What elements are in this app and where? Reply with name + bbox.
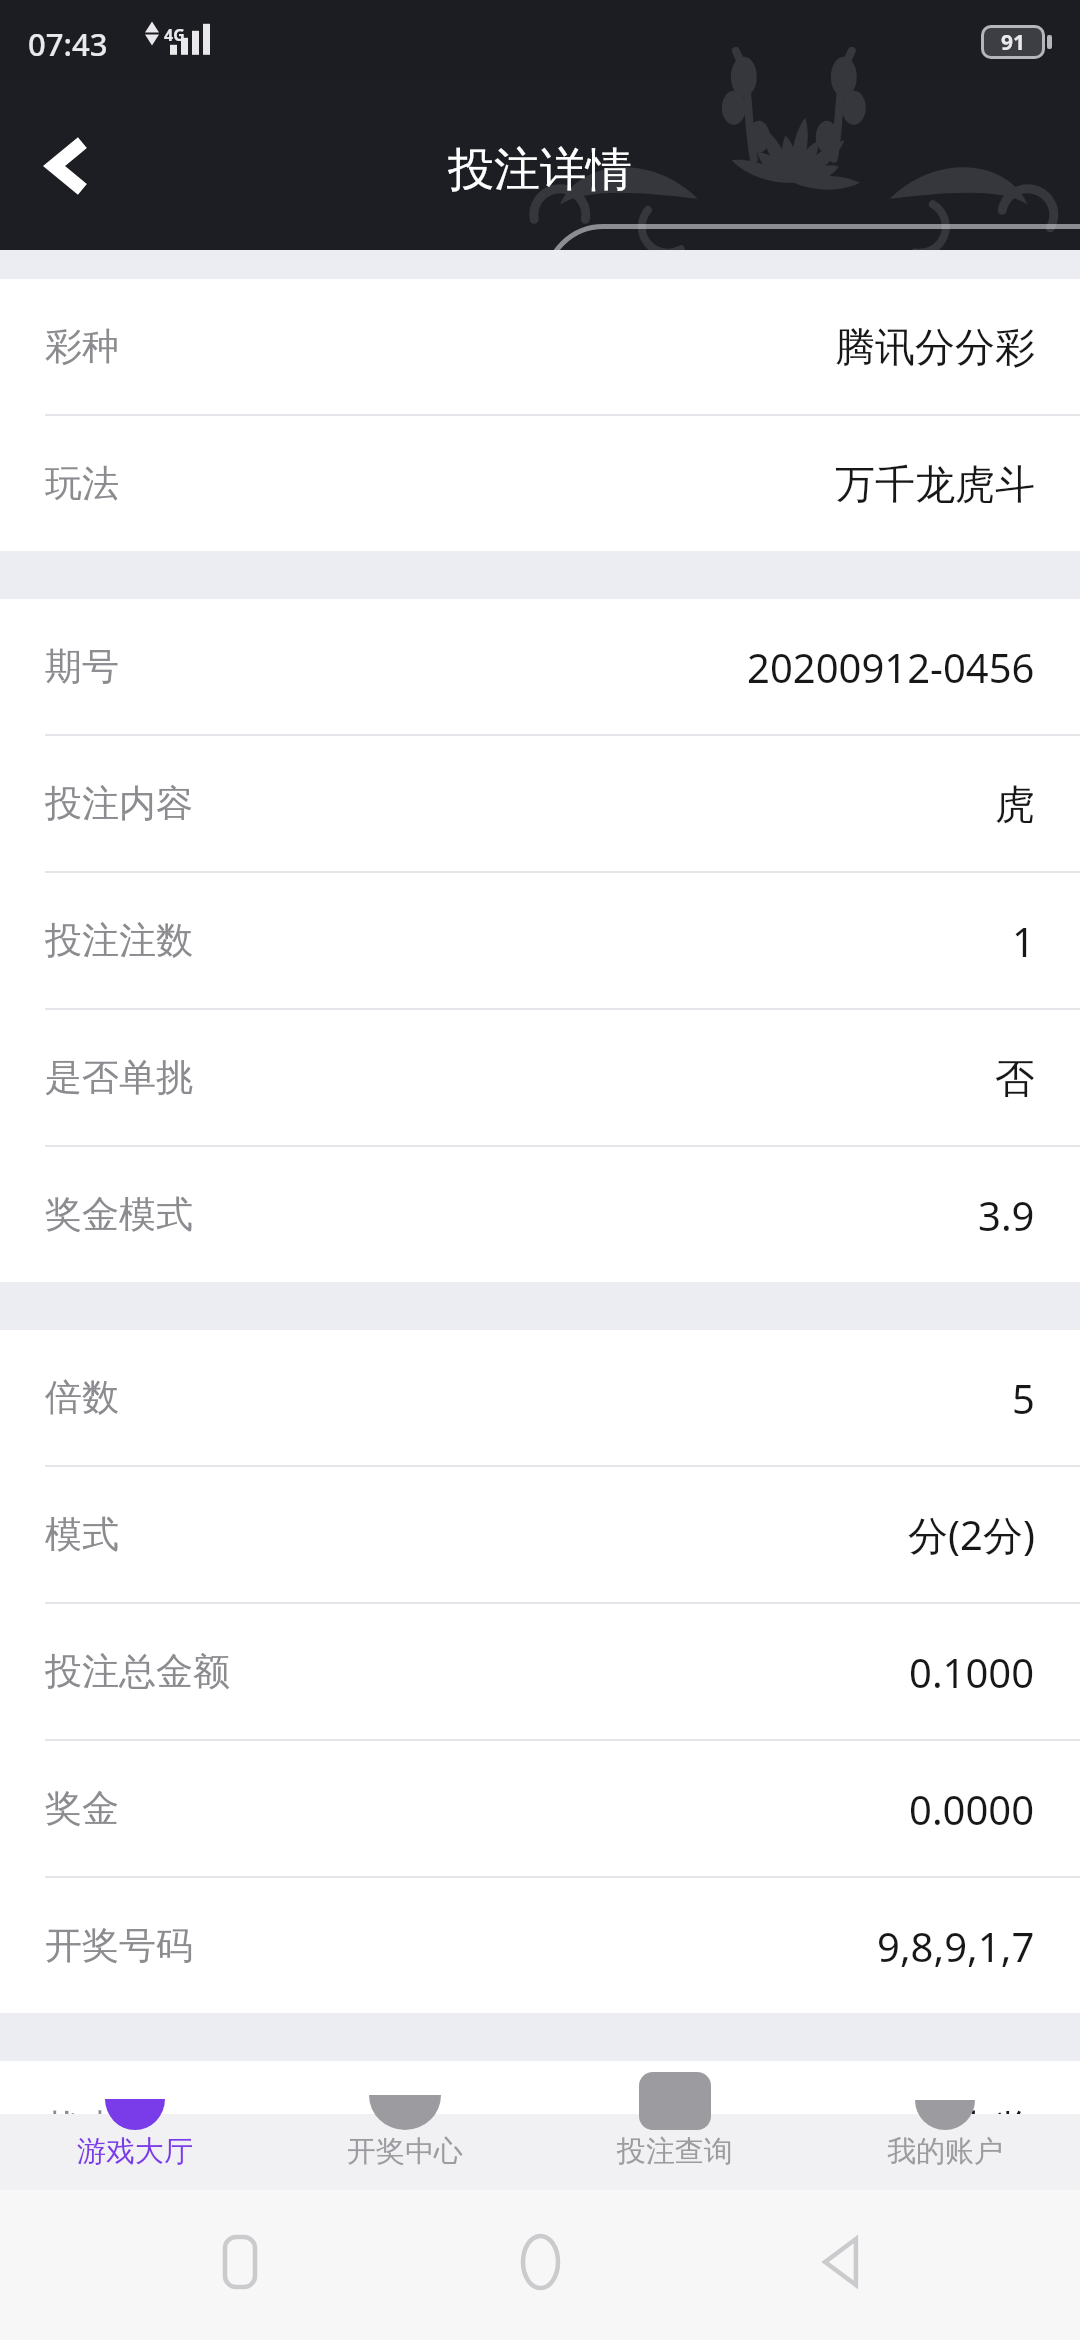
button[interactable]: 开奖号码 (0, 1878, 1080, 2013)
staticText: 0.1000 (909, 1645, 1035, 1699)
button[interactable]: Recents (180, 2220, 300, 2304)
button[interactable]: 倍数 (0, 1330, 1080, 1465)
staticText: 分(2分) (908, 1507, 1035, 1562)
staticText: 彩种 (45, 323, 119, 370)
button[interactable]: Back (0, 100, 132, 232)
staticText: 91 (1001, 28, 1026, 56)
button[interactable]: 投注总金额 (0, 1604, 1080, 1739)
staticText: 未中奖 (915, 2104, 1035, 2154)
staticText: 万千龙虎斗 (835, 459, 1035, 509)
staticText: 虎 (995, 779, 1035, 829)
staticText: 模式 (45, 1511, 119, 1558)
button[interactable]: 奖金 (0, 1741, 1080, 1876)
button[interactable]: 彩种 (0, 279, 1080, 414)
button[interactable]: 投注注数 (0, 873, 1080, 1008)
staticText: 腾讯分分彩 (835, 322, 1035, 372)
staticText: 否 (995, 1053, 1035, 1103)
button[interactable]: 投注查询 (540, 2114, 810, 2190)
staticText: 投注详情 (448, 141, 632, 199)
staticText: 1 (1012, 914, 1035, 968)
button[interactable]: 玩法 (0, 416, 1080, 551)
staticText: 3.9 (978, 1188, 1035, 1242)
button[interactable]: Back (780, 2220, 900, 2304)
staticText: 状态 (45, 2105, 119, 2152)
button[interactable]: 投注内容 (0, 736, 1080, 871)
staticText: 期号 (45, 643, 119, 690)
button[interactable]: 开奖中心 (270, 2114, 540, 2190)
button[interactable]: 模式 (0, 1467, 1080, 1602)
staticText: 投注内容 (45, 780, 193, 827)
button[interactable]: 我的账户 (810, 2114, 1080, 2190)
staticText: 我的账户 (887, 2133, 1003, 2170)
button[interactable]: 是否单挑 (0, 1010, 1080, 1145)
staticText: 玩法 (45, 460, 119, 507)
staticText: 开奖中心 (347, 2133, 463, 2170)
staticText: 开奖号码 (45, 1922, 193, 1969)
button[interactable]: 期号 (0, 599, 1080, 734)
staticText: 游戏大厅 (77, 2133, 193, 2170)
staticText: 9,8,9,1,7 (877, 1919, 1035, 1973)
staticText: 投注注数 (45, 917, 193, 964)
staticText: 5 (1012, 1371, 1035, 1425)
staticText: 是否单挑 (45, 1054, 193, 1101)
button[interactable]: Home (480, 2220, 600, 2304)
button[interactable]: 状态 (0, 2061, 1080, 2196)
staticText: 奖金模式 (45, 1191, 193, 1238)
staticText: 4G (164, 24, 185, 46)
staticText: 投注查询 (617, 2133, 733, 2170)
button[interactable]: 奖金模式 (0, 1147, 1080, 1282)
staticText: 奖金 (45, 1785, 119, 1832)
staticText: 07:43 (28, 23, 108, 65)
staticText: 倍数 (45, 1374, 119, 1421)
staticText: 投注总金额 (45, 1648, 230, 1695)
button[interactable]: 游戏大厅 (0, 2114, 270, 2190)
staticText: 0.0000 (909, 1782, 1035, 1836)
staticText: 20200912-0456 (747, 640, 1035, 694)
